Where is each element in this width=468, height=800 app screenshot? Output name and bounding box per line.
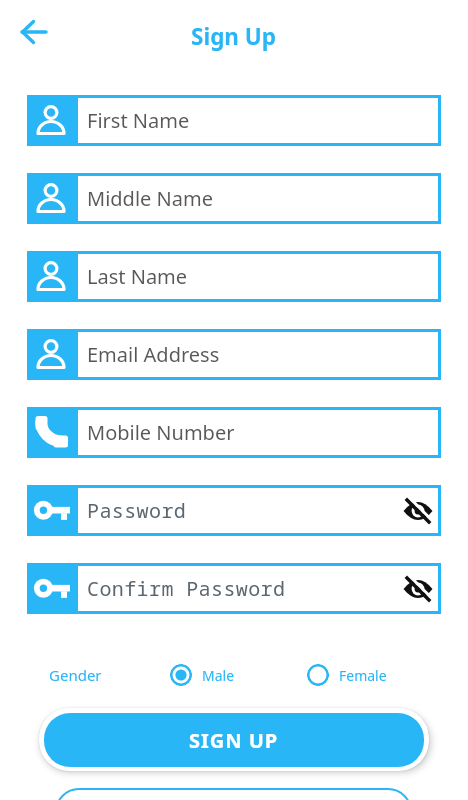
button[interactable]: Password	[27, 485, 441, 536]
button[interactable]: First Name	[27, 95, 441, 146]
staticText: Mobile Number	[87, 419, 235, 446]
button[interactable]: Female	[307, 664, 387, 686]
button[interactable]: Email Address	[27, 329, 441, 380]
staticText: Password	[87, 497, 187, 524]
button[interactable]: Middle Name	[27, 173, 441, 224]
button[interactable]: Mobile Number	[27, 407, 441, 458]
staticText: Middle Name	[87, 185, 213, 212]
staticText: Sign Up	[191, 21, 277, 52]
button[interactable]: SIGN UP	[39, 708, 429, 771]
button[interactable]: Last Name	[27, 251, 441, 302]
staticText: Gender	[49, 665, 102, 685]
button[interactable]: Male	[170, 664, 235, 686]
staticText: Male	[202, 666, 235, 685]
staticText: Confirm Password	[87, 575, 286, 602]
staticText: Email Address	[87, 341, 220, 368]
staticText: First Name	[87, 107, 190, 134]
button[interactable]	[14, 15, 54, 49]
staticText: Last Name	[87, 263, 188, 290]
staticText: SIGN UP	[189, 727, 279, 754]
button[interactable]	[55, 788, 412, 800]
button[interactable]: Confirm Password	[27, 563, 441, 614]
staticText: Female	[339, 666, 387, 685]
